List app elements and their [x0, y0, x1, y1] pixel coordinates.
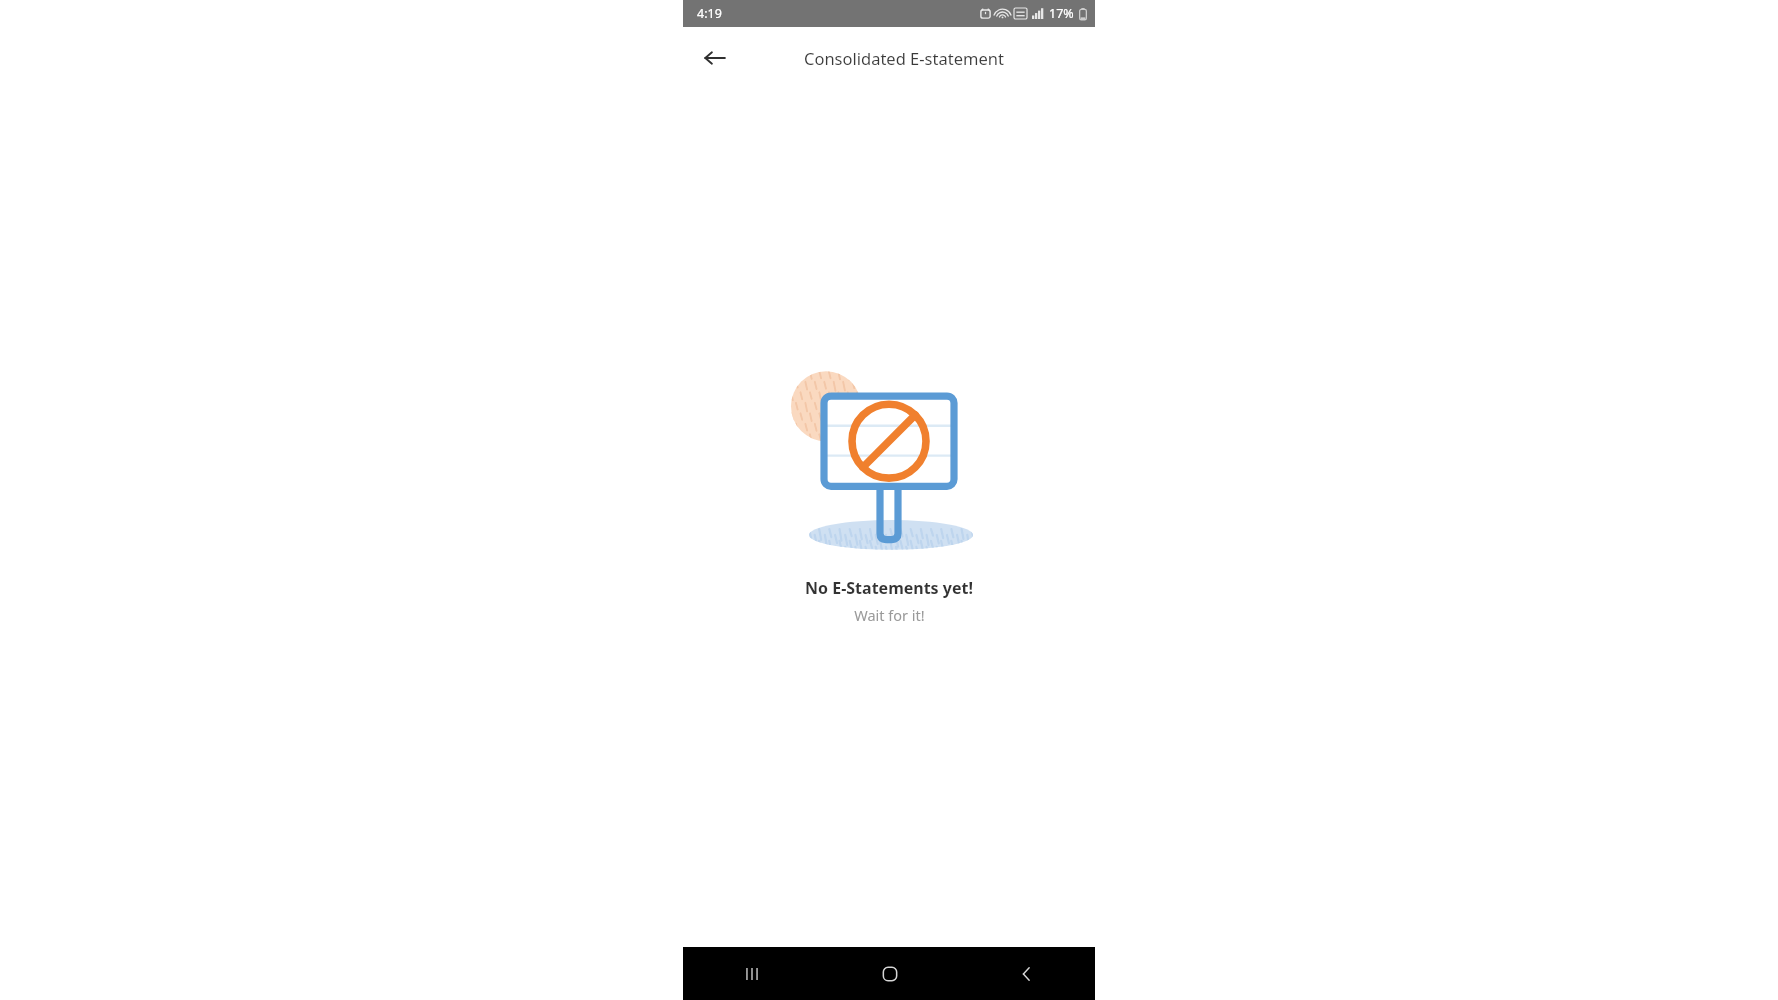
- staticText: Consolidated E-statement: [804, 47, 1004, 69]
- button[interactable]: Back: [693, 36, 737, 80]
- other: No statements illustration: [789, 352, 989, 557]
- button[interactable]: Recent apps: [683, 947, 821, 1000]
- button[interactable]: Back: [958, 947, 1095, 1000]
- staticText: 17%: [1049, 5, 1074, 22]
- staticText: 4:19: [697, 5, 722, 22]
- staticText: Wait for it!: [854, 605, 925, 625]
- staticText: No E-Statements yet!: [805, 577, 973, 599]
- button[interactable]: Home: [821, 947, 958, 1000]
